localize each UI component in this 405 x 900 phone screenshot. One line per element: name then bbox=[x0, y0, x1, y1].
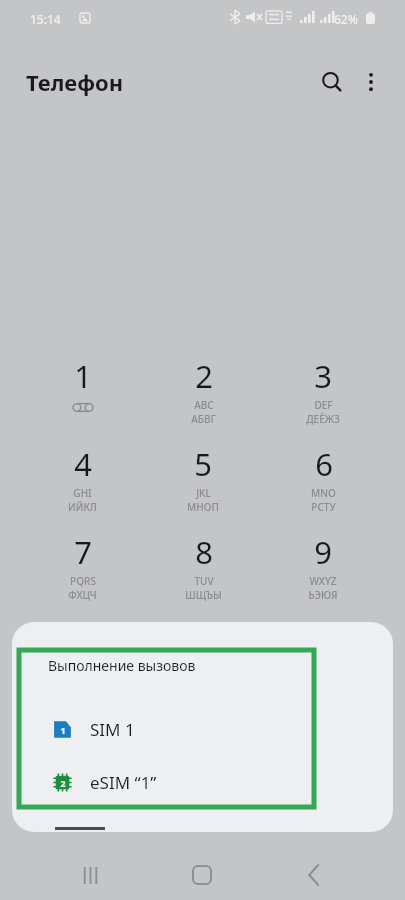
staticText: DEF bbox=[314, 398, 333, 412]
staticText: ИЙКЛ bbox=[68, 500, 97, 514]
staticText: WXYZ bbox=[309, 574, 337, 588]
staticText: 1 bbox=[74, 355, 92, 397]
button[interactable]: 3 bbox=[263, 355, 383, 443]
staticText: ЬЭЮЯ bbox=[308, 588, 338, 602]
staticText: TUV bbox=[194, 574, 214, 588]
button[interactable]: 0 bbox=[143, 619, 263, 707]
staticText: 15:14 bbox=[30, 11, 61, 27]
staticText: 9 bbox=[314, 531, 332, 573]
button[interactable]: Recents bbox=[68, 853, 112, 897]
button[interactable]: 4 bbox=[22, 443, 143, 531]
button[interactable]: 6 bbox=[263, 443, 383, 531]
button[interactable]: Back bbox=[292, 853, 336, 897]
staticText: 4 bbox=[74, 443, 92, 485]
staticText: РСТУ bbox=[311, 500, 336, 514]
button[interactable]: * bbox=[22, 619, 143, 707]
button[interactable]: 1 bbox=[12, 708, 393, 750]
staticText: GHI bbox=[73, 486, 92, 500]
staticText: SIM 1 bbox=[90, 718, 135, 741]
staticText: ШЩЪЫ bbox=[185, 588, 222, 602]
staticText: 3 bbox=[314, 355, 332, 397]
button[interactable]: More options bbox=[351, 62, 391, 102]
staticText: PQRS bbox=[70, 574, 96, 588]
button[interactable]: Home bbox=[180, 853, 224, 897]
button[interactable]: 2 bbox=[12, 761, 393, 803]
button[interactable]: 1 bbox=[22, 355, 143, 443]
button[interactable]: # bbox=[263, 619, 383, 707]
staticText: ДЕЁЖЗ bbox=[306, 412, 340, 426]
staticText: Телефон bbox=[26, 67, 124, 97]
staticText: МНОП bbox=[187, 500, 219, 514]
staticText: 2 bbox=[195, 355, 213, 397]
staticText: JKL bbox=[196, 486, 211, 500]
staticText: 1 bbox=[60, 724, 66, 736]
staticText: * bbox=[74, 619, 92, 661]
button[interactable]: Search bbox=[312, 62, 352, 102]
staticText: 2 bbox=[60, 777, 66, 789]
staticText: АБВГ bbox=[191, 412, 216, 426]
staticText: 6 bbox=[315, 443, 333, 485]
staticText: MNO bbox=[311, 486, 336, 500]
staticText: 62% bbox=[334, 11, 358, 27]
button[interactable]: 9 bbox=[263, 531, 383, 619]
button[interactable]: 7 bbox=[22, 531, 143, 619]
staticText: eSIM “1” bbox=[90, 771, 157, 794]
button[interactable]: 2 bbox=[143, 355, 263, 443]
staticText: 7 bbox=[74, 531, 92, 573]
staticText: 8 bbox=[195, 531, 213, 573]
button[interactable]: 5 bbox=[143, 443, 263, 531]
staticText: # bbox=[313, 619, 334, 661]
staticText: Выполнение вызовов bbox=[48, 656, 196, 675]
staticText: 0 bbox=[194, 619, 212, 661]
staticText: ABC bbox=[194, 398, 214, 412]
staticText: 5 bbox=[194, 443, 212, 485]
button[interactable]: 8 bbox=[143, 531, 263, 619]
staticText: ФХЦЧ bbox=[68, 588, 97, 602]
